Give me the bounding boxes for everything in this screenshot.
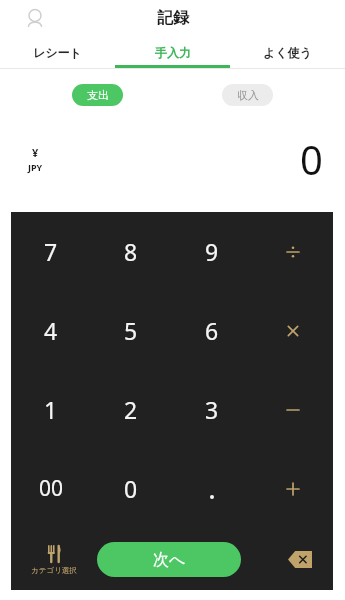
button[interactable]: 00 [11,449,91,528]
button[interactable] [171,449,252,528]
staticText: レシート [33,45,82,60]
staticText: 0 [300,132,323,186]
staticText: 支出 [87,88,109,102]
staticText: 記録 [157,8,189,28]
button[interactable]: 次へ [97,542,241,577]
staticText: 次へ [153,550,186,570]
button[interactable]: 支出 [72,84,123,106]
button[interactable]: よく使う [230,36,345,68]
staticText: 3 [205,394,219,425]
staticText: 0 [124,473,138,504]
button[interactable]: 6 [171,291,252,370]
staticText: ¥ [32,145,39,160]
button[interactable]: 手入力 [115,36,230,68]
button[interactable]: Backspace [285,546,315,572]
staticText: よく使う [263,45,312,60]
staticText: 4 [44,315,58,346]
staticText: 8 [124,236,138,267]
staticText: 収入 [237,88,259,102]
button[interactable]: Profile [22,5,48,31]
staticText: JPY [28,161,43,173]
button[interactable] [252,291,333,370]
button[interactable] [252,212,333,291]
staticText: 6 [205,315,219,346]
staticText: 手入力 [155,45,191,60]
button[interactable]: レシート [0,36,115,68]
staticText: カテゴリ選択 [31,566,77,575]
staticText: 1 [44,394,58,425]
staticText: 2 [124,394,138,425]
button[interactable]: 5 [91,291,171,370]
button[interactable]: 収入 [222,84,273,106]
button[interactable]: 9 [171,212,252,291]
button[interactable]: 4 [11,291,91,370]
button[interactable] [252,370,333,449]
button[interactable]: 8 [91,212,171,291]
button[interactable]: 1 [11,370,91,449]
button[interactable] [252,449,333,528]
button[interactable]: 3 [171,370,252,449]
staticText: 00 [39,474,64,503]
staticText: 7 [44,236,58,267]
staticText: 5 [124,315,138,346]
button[interactable]: 7 [11,212,91,291]
staticText: 9 [205,236,219,267]
button[interactable]: 0 [91,449,171,528]
button[interactable]: 2 [91,370,171,449]
button[interactable]: カテゴリ選択 [31,544,77,575]
